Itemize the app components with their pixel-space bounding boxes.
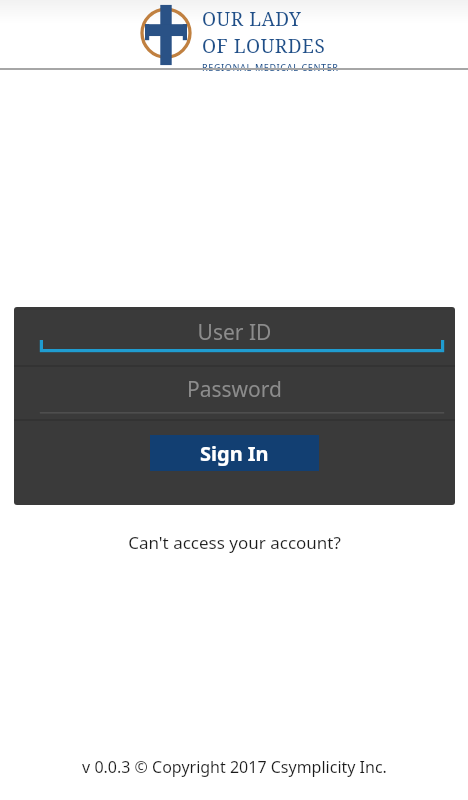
button[interactable]: User ID xyxy=(14,307,455,365)
button[interactable]: Password xyxy=(14,367,455,419)
button[interactable]: Can't access your account? xyxy=(0,527,468,557)
staticText: REGIONAL MEDICAL CENTER xyxy=(202,61,339,73)
staticText: Password xyxy=(14,375,455,404)
staticText: v 0.0.3 © Copyright 2017 Csymplicity Inc… xyxy=(82,756,387,778)
button[interactable]: Sign In xyxy=(150,435,319,471)
staticText: User ID xyxy=(14,318,455,347)
staticText: OUR LADY xyxy=(202,6,302,32)
staticText: Sign In xyxy=(200,440,269,467)
staticText: OF LOURDES xyxy=(202,33,326,59)
staticText: Can't access your account? xyxy=(128,531,341,554)
